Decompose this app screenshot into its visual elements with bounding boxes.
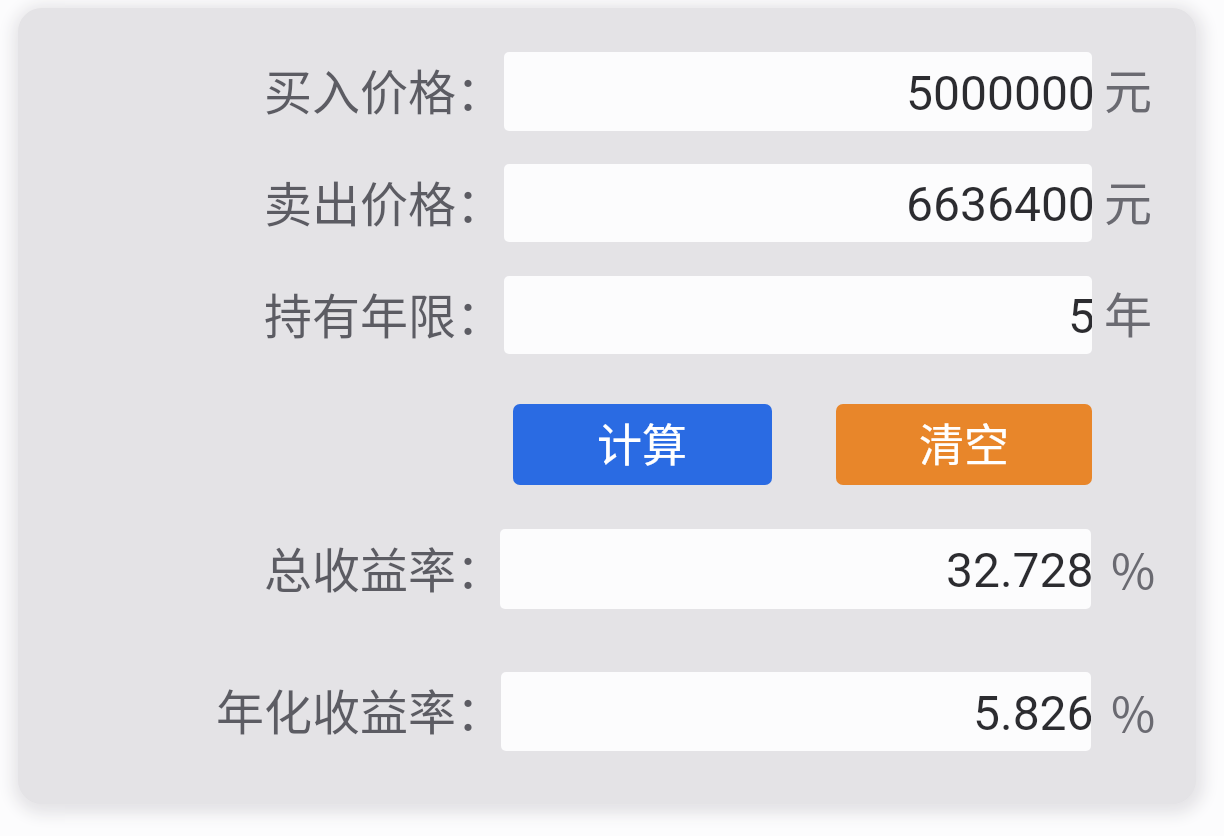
- staticText: 总收益率：: [104, 532, 504, 602]
- staticText: 元: [1104, 53, 1153, 123]
- staticText: 卖出价格：: [104, 166, 504, 236]
- staticText: 清空: [919, 410, 1010, 475]
- button[interactable]: 买入价格: [504, 52, 1092, 131]
- staticText: 6636400: [906, 176, 1092, 232]
- staticText: %: [1111, 533, 1156, 603]
- staticText: 元: [1104, 165, 1153, 235]
- button[interactable]: 持有年限: [504, 276, 1092, 354]
- button[interactable]: 总收益率: [500, 529, 1091, 609]
- button[interactable]: 年化收益率: [501, 672, 1091, 751]
- button[interactable]: 计算: [513, 404, 772, 485]
- staticText: 5000000: [906, 65, 1092, 121]
- staticText: 5.826: [973, 685, 1091, 741]
- staticText: 年化收益率：: [104, 674, 504, 744]
- staticText: 5: [1068, 288, 1092, 344]
- staticText: 32.728: [946, 542, 1091, 598]
- staticText: %: [1111, 676, 1156, 746]
- staticText: 买入价格：: [104, 54, 504, 124]
- staticText: 年: [1104, 277, 1153, 347]
- staticText: 持有年限：: [104, 278, 504, 348]
- button[interactable]: 卖出价格: [504, 164, 1092, 242]
- staticText: 计算: [597, 410, 688, 475]
- button[interactable]: 清空: [836, 404, 1092, 485]
